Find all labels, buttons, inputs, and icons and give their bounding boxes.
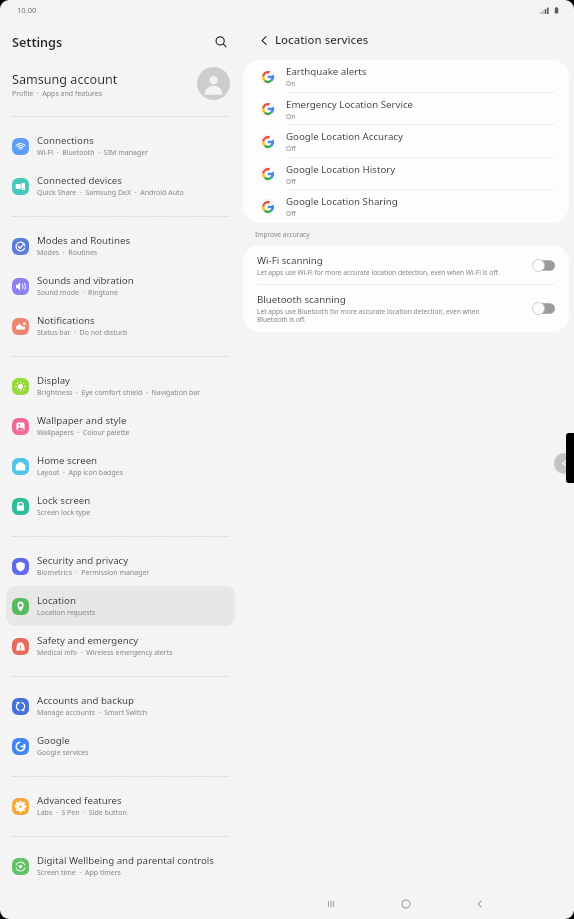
button[interactable]: Location: [6, 586, 235, 626]
staticText: Let apps use Bluetooth for more accurate…: [257, 307, 494, 324]
staticText: On: [286, 112, 296, 121]
staticText: Biometrics · Permission manager: [37, 568, 150, 578]
staticText: Google Location Sharing: [286, 195, 398, 208]
button[interactable]: Bluetooth scanning: [243, 285, 569, 332]
button[interactable]: Toggle off: [532, 302, 555, 315]
staticText: Modes · Routines: [37, 248, 98, 258]
button[interactable]: Back: [467, 891, 493, 917]
staticText: Settings: [12, 34, 63, 51]
staticText: Google Location Accuracy: [286, 130, 403, 143]
staticText: Notifications: [37, 314, 95, 327]
button[interactable]: Notifications: [6, 306, 235, 346]
staticText: Wi-Fi scanning: [257, 254, 323, 267]
staticText: 10.00: [17, 5, 37, 15]
button[interactable]: Home: [393, 891, 419, 917]
staticText: Status bar · Do not disturb: [37, 328, 128, 338]
staticText: Off: [286, 177, 296, 186]
staticText: Connections: [37, 134, 94, 147]
staticText: Off: [286, 209, 296, 218]
staticText: Security and privacy: [37, 554, 129, 567]
staticText: Safety and emergency: [37, 634, 139, 647]
button[interactable]: Samsung account: [0, 64, 241, 106]
button[interactable]: Connected devices: [6, 166, 235, 206]
button[interactable]: Digital Wellbeing and parental controls: [6, 846, 235, 886]
button[interactable]: Google: [6, 726, 235, 766]
staticText: Sound mode · Ringtone: [37, 288, 118, 298]
button[interactable]: Emergency Location Service: [243, 93, 569, 125]
staticText: Brightness · Eye comfort shield · Naviga…: [37, 388, 201, 398]
staticText: Profile · Apps and features: [12, 89, 103, 99]
staticText: Display: [37, 374, 71, 387]
staticText: Let apps use Wi-Fi for more accurate loc…: [257, 268, 500, 277]
button[interactable]: Wallpaper and style: [6, 406, 235, 446]
staticText: Quick Share · Samsung DeX · Android Auto: [37, 188, 184, 198]
staticText: Location requests: [37, 608, 96, 618]
staticText: Google: [37, 734, 70, 747]
button[interactable]: Home screen: [6, 446, 235, 486]
staticText: Screen lock type: [37, 508, 91, 518]
button[interactable]: Lock screen: [6, 486, 235, 526]
staticText: Google Location History: [286, 163, 396, 176]
staticText: Home screen: [37, 454, 98, 467]
button[interactable]: Edge panel: [566, 433, 574, 483]
button[interactable]: Sounds and vibration: [6, 266, 235, 306]
staticText: Connected devices: [37, 174, 122, 187]
staticText: Sounds and vibration: [37, 274, 134, 287]
staticText: Location services: [275, 32, 369, 48]
button[interactable]: Advanced features: [6, 786, 235, 826]
button[interactable]: Google Location History: [243, 158, 569, 190]
staticText: Advanced features: [37, 794, 122, 807]
button[interactable]: Toggle off: [532, 259, 555, 272]
staticText: Medical info · Wireless emergency alerts: [37, 648, 173, 658]
staticText: Emergency Location Service: [286, 98, 414, 111]
staticText: Improve accuracy: [255, 230, 310, 239]
button[interactable]: Back: [254, 30, 274, 50]
staticText: Earthquake alerts: [286, 65, 367, 78]
staticText: Wallpaper and style: [37, 414, 127, 427]
staticText: Labs · S Pen · Side button: [37, 808, 127, 818]
button[interactable]: Safety and emergency: [6, 626, 235, 666]
staticText: Manage accounts · Smart Switch: [37, 708, 148, 718]
staticText: Off: [286, 144, 296, 153]
staticText: Samsung account: [12, 71, 118, 88]
button[interactable]: Modes and Routines: [6, 226, 235, 266]
staticText: Screen time · App timers: [37, 868, 121, 878]
button[interactable]: Google Location Accuracy: [243, 125, 569, 158]
staticText: Bluetooth scanning: [257, 293, 346, 306]
staticText: Lock screen: [37, 494, 91, 507]
button[interactable]: Search: [210, 31, 232, 53]
staticText: Digital Wellbeing and parental controls: [37, 854, 214, 867]
button[interactable]: Wi-Fi scanning: [243, 245, 569, 285]
button[interactable]: Google Location Sharing: [243, 190, 569, 223]
button[interactable]: Recents: [318, 891, 344, 917]
other: Edge panel handle: [554, 453, 574, 474]
button[interactable]: Connections: [6, 126, 235, 166]
staticText: Wallpapers · Colour palette: [37, 428, 130, 438]
button[interactable]: Display: [6, 366, 235, 406]
staticText: Google services: [37, 748, 89, 758]
staticText: On: [286, 79, 296, 88]
staticText: Layout · App icon badges: [37, 468, 124, 478]
button[interactable]: Security and privacy: [6, 546, 235, 586]
staticText: Location: [37, 594, 76, 607]
staticText: Wi-Fi · Bluetooth · SIM manager: [37, 148, 149, 158]
button[interactable]: Accounts and backup: [6, 686, 235, 726]
staticText: Accounts and backup: [37, 694, 135, 707]
button[interactable]: Earthquake alerts: [243, 60, 569, 93]
staticText: Modes and Routines: [37, 234, 131, 247]
